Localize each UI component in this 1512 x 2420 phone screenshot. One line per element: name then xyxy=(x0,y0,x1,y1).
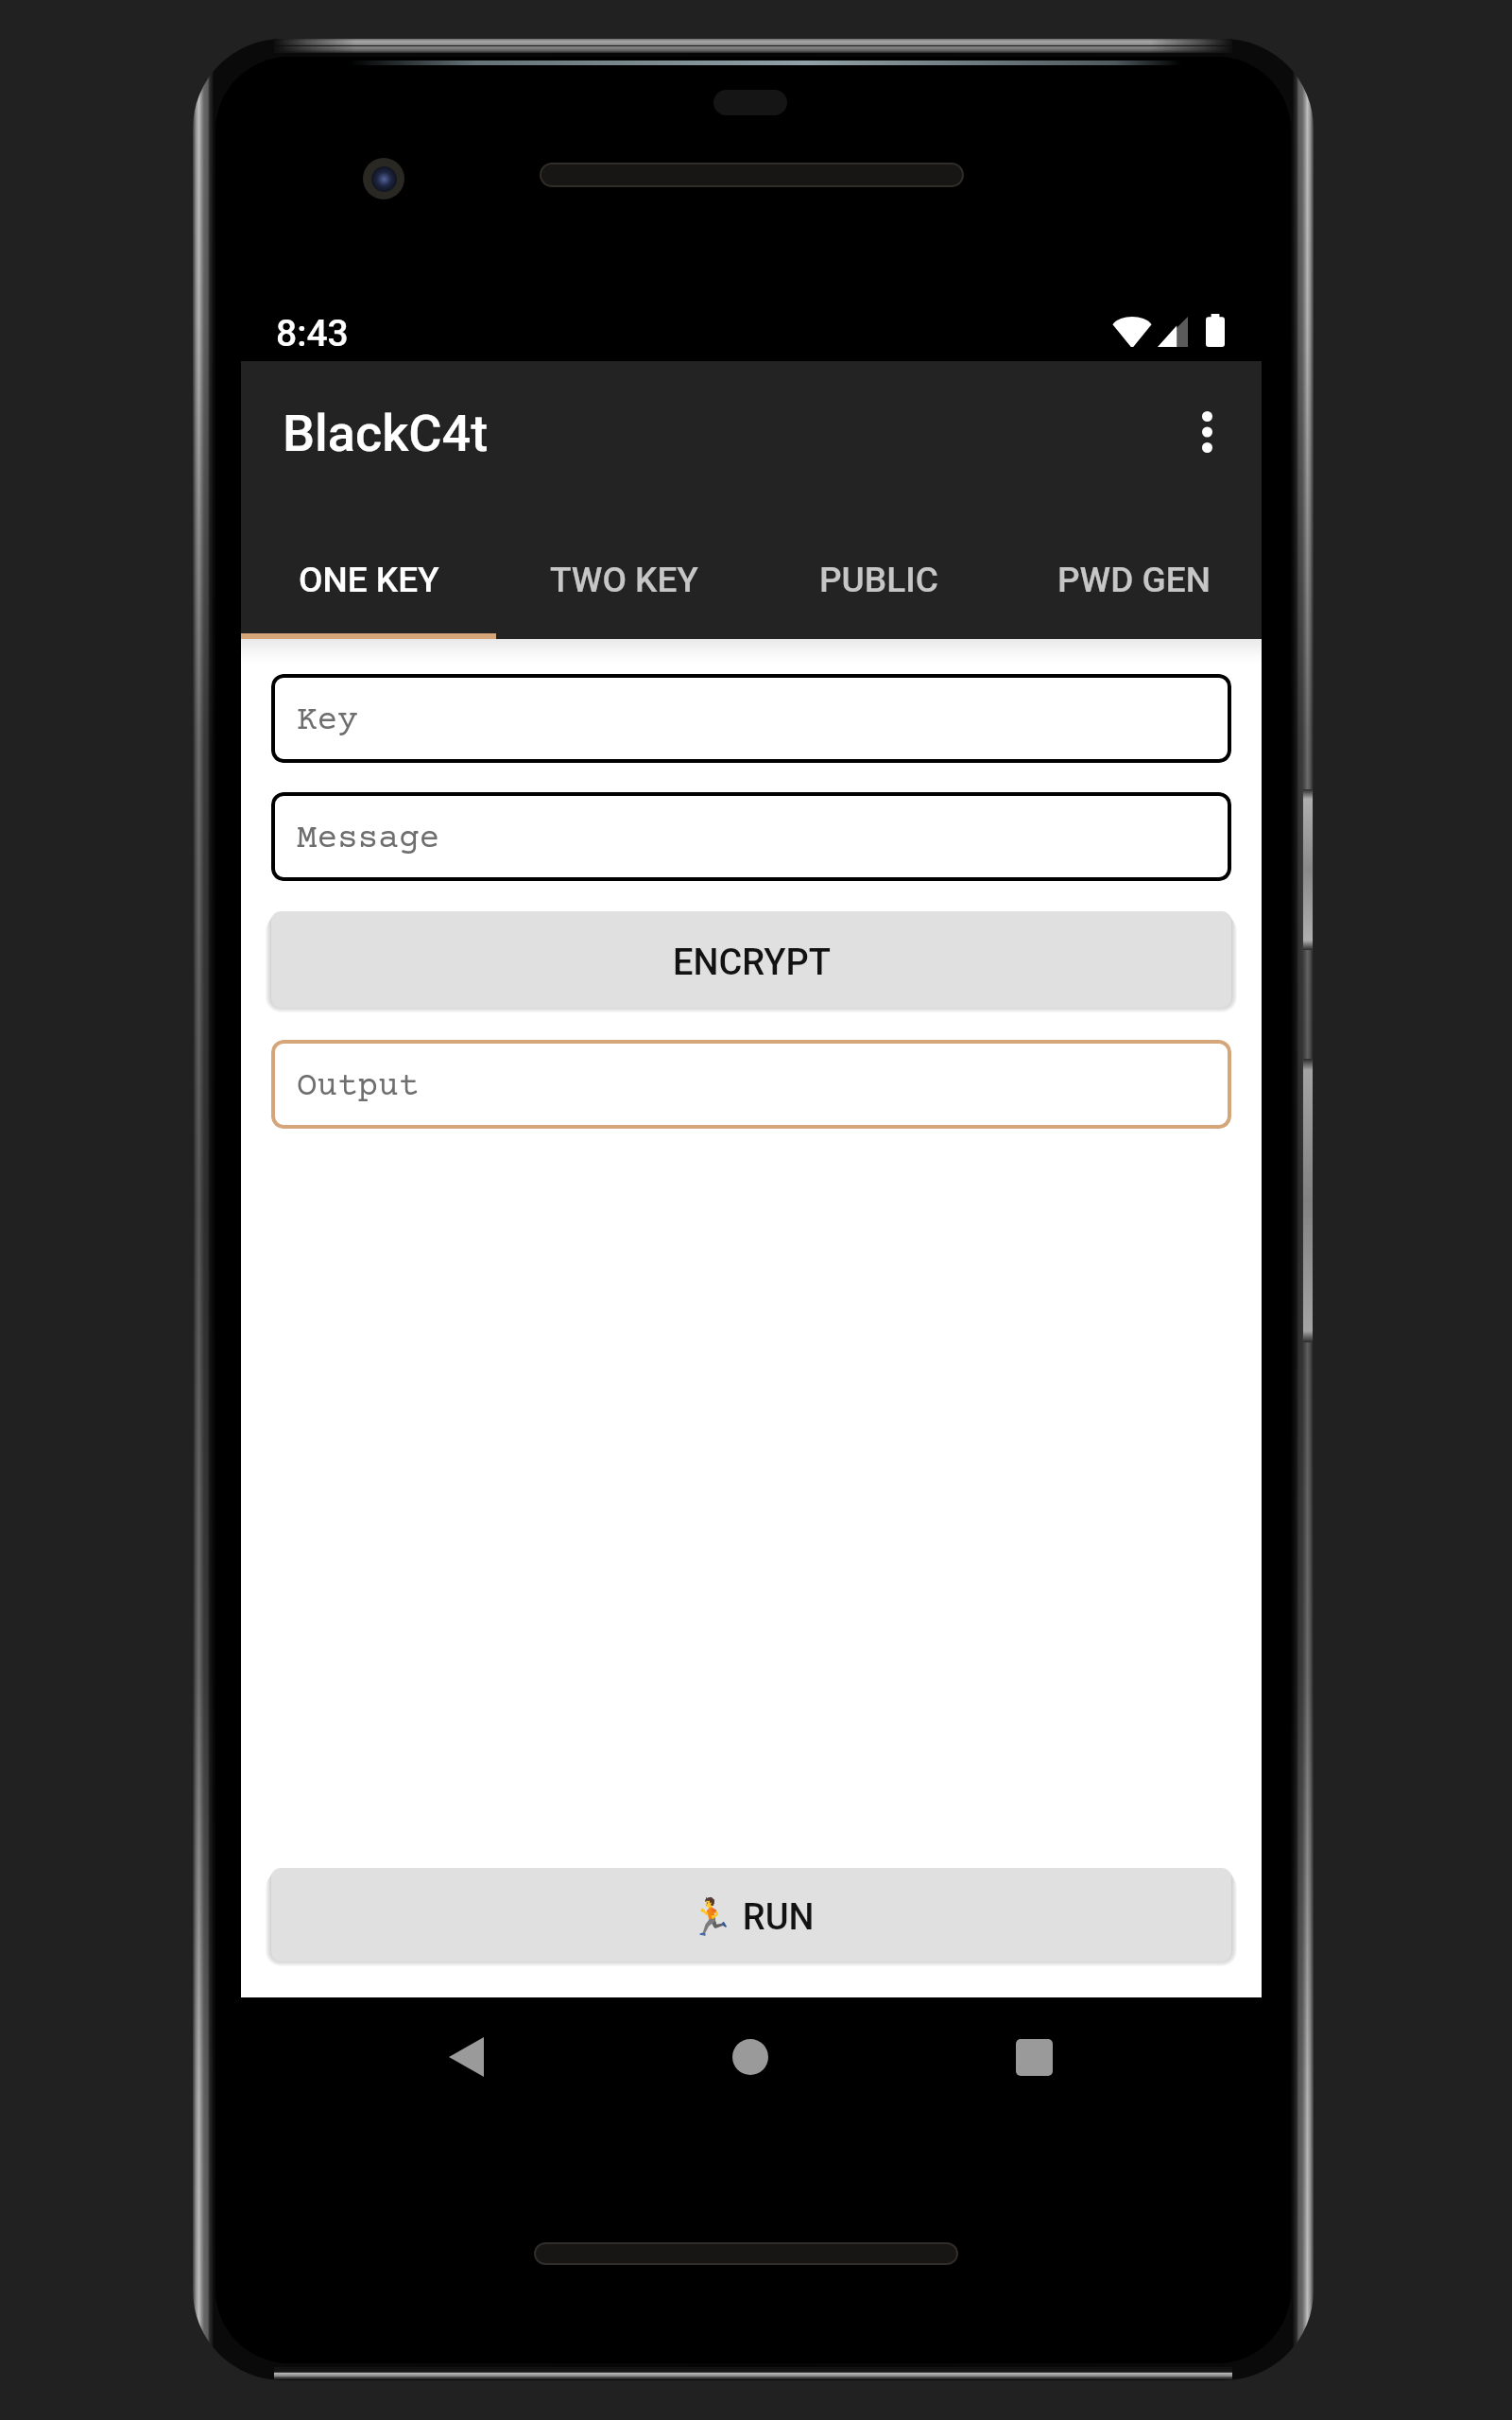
staticText: BlackC4t xyxy=(283,404,489,463)
staticText: 8:43 xyxy=(276,312,349,355)
staticText: TWO KEY xyxy=(550,560,698,600)
button[interactable]: More options xyxy=(1152,377,1262,487)
button[interactable]: PWD GEN xyxy=(1006,502,1262,639)
button[interactable]: ONE KEY xyxy=(241,502,496,639)
button[interactable]: Recents xyxy=(963,1997,1105,2117)
button[interactable]: Message xyxy=(271,792,1231,881)
button[interactable]: 🏃 RUN xyxy=(271,1868,1231,1962)
staticText: ENCRYPT xyxy=(673,942,831,984)
button[interactable]: ENCRYPT xyxy=(271,911,1231,1008)
staticText: Key xyxy=(297,702,358,740)
staticText: Message xyxy=(297,821,440,858)
button[interactable]: Key xyxy=(271,674,1231,763)
button[interactable]: Output xyxy=(271,1040,1231,1129)
button[interactable]: Home xyxy=(679,1997,821,2117)
button[interactable]: PUBLIC xyxy=(751,502,1006,639)
staticText: ONE KEY xyxy=(299,560,439,600)
staticText: Output xyxy=(297,1068,420,1106)
staticText: PUBLIC xyxy=(819,560,938,600)
button[interactable]: TWO KEY xyxy=(496,502,751,639)
staticText: 🏃 RUN xyxy=(689,1896,815,1939)
staticText: PWD GEN xyxy=(1057,560,1211,600)
button[interactable]: Back xyxy=(395,1997,537,2117)
